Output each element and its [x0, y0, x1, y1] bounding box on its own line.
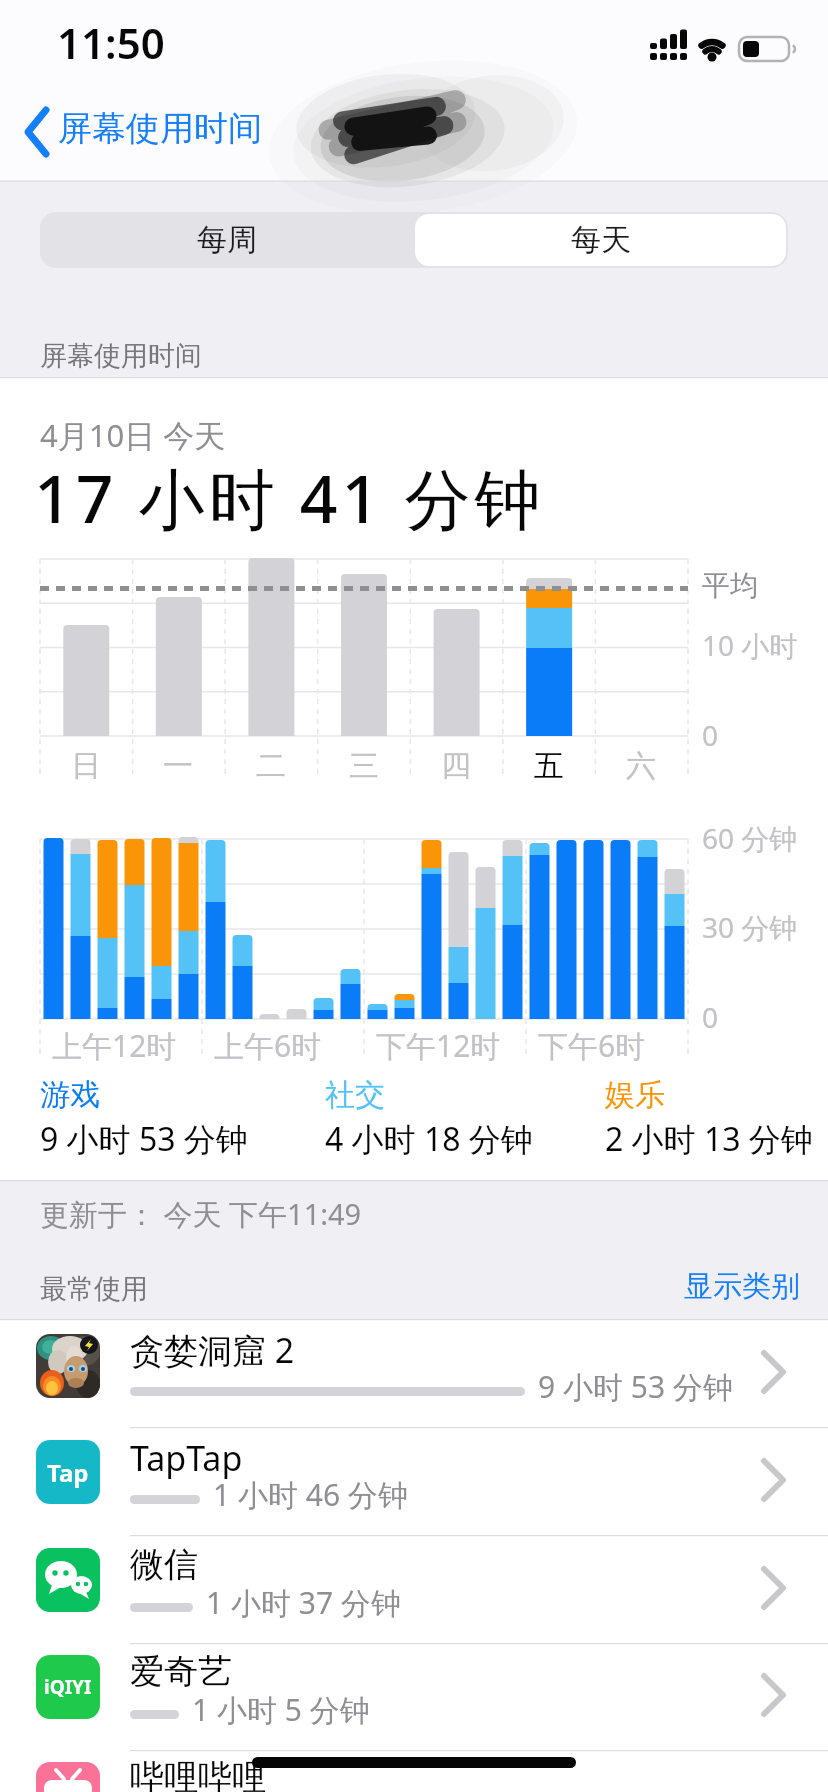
staticText: 日 — [71, 747, 101, 785]
staticText: 屏幕使用时间 — [40, 339, 202, 373]
staticText: Tap — [47, 1456, 89, 1489]
staticText: 0 — [702, 998, 719, 1036]
button[interactable]: 哔哩哔哩 — [0, 1749, 828, 1792]
staticText: 17 小时 41 分钟 — [34, 452, 545, 542]
staticText: 四 — [441, 747, 471, 785]
staticText: 1 小时 5 分钟 — [192, 1689, 370, 1730]
staticText: 六 — [626, 747, 656, 785]
staticText: 上午12时 — [52, 1025, 177, 1066]
staticText: 4 小时 18 分钟 — [325, 1117, 533, 1161]
staticText: iQIYI — [44, 1674, 92, 1700]
button[interactable]: 每周 — [40, 212, 414, 268]
staticText: 下午6时 — [538, 1025, 646, 1066]
button[interactable]: 贪婪洞窟 2 — [0, 1320, 828, 1428]
staticText: 4月10日 今天 — [40, 414, 226, 456]
staticText: 2 小时 13 分钟 — [605, 1117, 813, 1161]
staticText: 1 小时 37 分钟 — [206, 1582, 401, 1623]
staticText: 爱奇艺 — [130, 1650, 232, 1693]
staticText: 30 分钟 — [702, 908, 798, 946]
staticText: 每天 — [571, 221, 631, 259]
staticText: 60 分钟 — [702, 819, 798, 857]
staticText: 10 小时 — [702, 626, 798, 664]
staticText: 哔哩哔哩 — [130, 1756, 266, 1792]
staticText: 1 小时 46 分钟 — [213, 1474, 408, 1515]
staticText: 9 小时 53 分钟 — [538, 1366, 733, 1407]
staticText: 社交 — [325, 1076, 385, 1114]
staticText: 贪婪洞窟 2 — [130, 1327, 295, 1373]
staticText: 9 小时 53 分钟 — [40, 1117, 248, 1161]
staticText: 上午6时 — [214, 1025, 322, 1066]
staticText: 最常使用 — [40, 1272, 148, 1306]
staticText: 五 — [534, 747, 564, 785]
button[interactable]: 每天 — [415, 214, 786, 266]
staticText: 下午12时 — [376, 1025, 501, 1066]
staticText: 游戏 — [40, 1076, 100, 1114]
button[interactable]: 屏幕使用时间 — [16, 100, 272, 164]
staticText: TapTap — [130, 1435, 243, 1481]
staticText: 屏幕使用时间 — [58, 107, 262, 150]
button[interactable]: 微信 — [0, 1536, 828, 1644]
button[interactable]: 显示类别 — [620, 1262, 800, 1310]
staticText: 每周 — [197, 221, 257, 259]
button[interactable]: TapTap — [0, 1428, 828, 1536]
staticText: 三 — [349, 747, 379, 785]
staticText: 二 — [256, 747, 286, 785]
button[interactable]: 爱奇艺 — [0, 1643, 828, 1751]
staticText: 娱乐 — [605, 1076, 665, 1114]
staticText: 平均 — [702, 568, 758, 603]
staticText: 显示类别 — [684, 1268, 800, 1305]
staticText: 0 — [702, 716, 719, 754]
staticText: 11:50 — [57, 14, 165, 71]
staticText: 更新于： 今天 下午11:49 — [40, 1194, 362, 1234]
staticText: 一 — [163, 747, 193, 785]
staticText: 微信 — [130, 1543, 198, 1586]
